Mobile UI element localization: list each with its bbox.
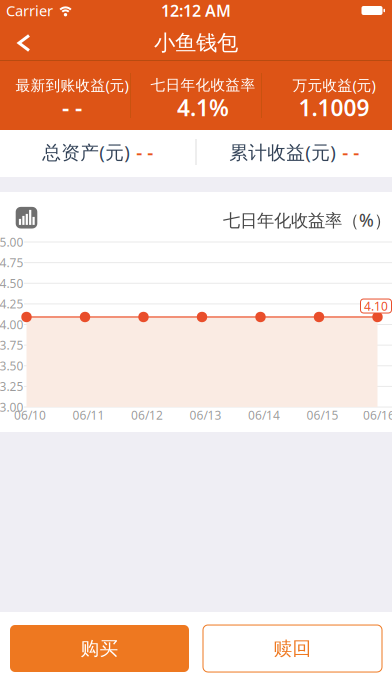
staticText: 4.10 (364, 298, 388, 314)
staticText: 06/13 (189, 407, 221, 423)
button[interactable]: 购买 (10, 625, 189, 672)
staticText: Carrier (6, 1, 53, 20)
staticText: 小鱼钱包 (154, 30, 238, 56)
staticText: 1.1009 (298, 92, 369, 122)
staticText: 赎回 (273, 637, 311, 660)
staticText: 总资产(元) (42, 140, 130, 164)
staticText: 12:12 AM (161, 0, 231, 21)
staticText: 七日年化收益率 (150, 76, 255, 94)
staticText: 06/15 (306, 407, 338, 423)
staticText: 购买 (80, 637, 118, 660)
staticText: - - (342, 140, 359, 164)
staticText: 06/16 (363, 407, 392, 423)
staticText: 06/12 (131, 407, 163, 423)
staticText: 万元收益(元) (292, 75, 375, 95)
staticText: 06/10 (14, 407, 46, 423)
button[interactable]: 赎回 (203, 625, 382, 672)
staticText: 4.50 (0, 275, 23, 291)
staticText: - - (136, 140, 153, 164)
staticText: 七日年化收益率（%） (223, 208, 391, 231)
staticText: 4.25 (0, 296, 23, 312)
staticText: 3.00 (0, 399, 23, 415)
staticText: 3.75 (0, 337, 23, 353)
button[interactable]: Back (0, 21, 43, 61)
staticText: 3.25 (0, 378, 23, 394)
staticText: 累计收益(元) (229, 140, 336, 164)
staticText: 4.1% (177, 92, 229, 122)
staticText: 5.00 (0, 234, 23, 250)
staticText: 3.50 (0, 358, 23, 374)
staticText: 06/11 (72, 407, 104, 423)
staticText: 4.00 (0, 317, 23, 332)
staticText: - - (62, 92, 82, 122)
staticText: 4.75 (0, 255, 23, 271)
staticText: 最新到账收益(元) (15, 75, 128, 95)
staticText: 06/14 (248, 407, 280, 423)
